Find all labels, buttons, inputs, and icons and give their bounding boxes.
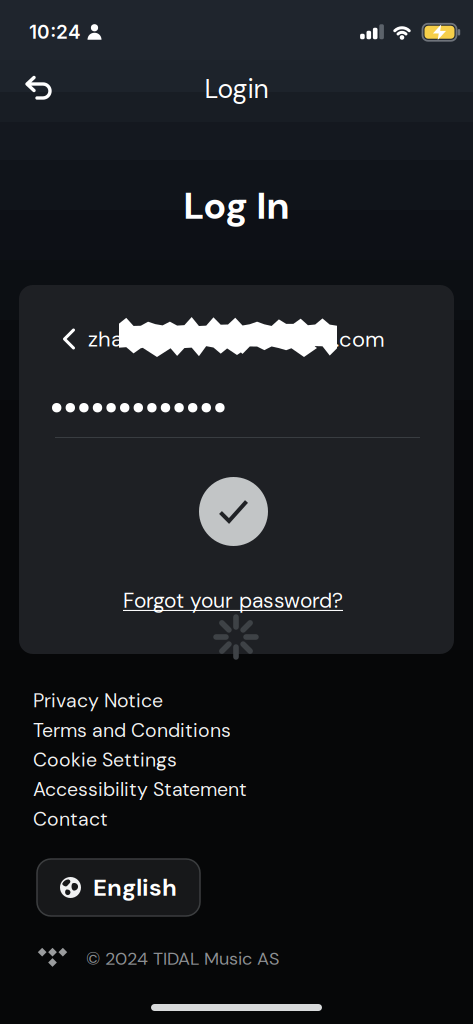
staticText: © 2024 TIDAL Music AS <box>86 947 279 970</box>
staticText: Accessibility Statement <box>33 777 247 802</box>
staticText: zha <box>88 325 123 353</box>
staticText: Privacy Notice <box>33 688 163 713</box>
staticText: 10:24 <box>29 20 81 43</box>
staticText: English <box>93 872 177 903</box>
staticText: Log In <box>183 181 289 230</box>
staticText: Contact <box>33 806 108 832</box>
button[interactable]: Change email <box>19 315 454 363</box>
button[interactable]: English <box>37 859 200 916</box>
staticText: Forgot your password? <box>123 587 343 614</box>
staticText: Terms and Conditions <box>33 718 231 743</box>
button[interactable]: Forgot your password? <box>123 587 343 614</box>
button[interactable]: Contact <box>33 806 108 832</box>
button[interactable]: Cookie Settings <box>33 747 177 773</box>
button[interactable]: Terms and Conditions <box>33 718 231 743</box>
button[interactable]: Accessibility Statement <box>33 777 247 802</box>
button[interactable]: Privacy Notice <box>33 688 163 713</box>
staticText: Cookie Settings <box>33 747 177 773</box>
button[interactable]: Back <box>0 71 54 111</box>
button[interactable]: Log in <box>199 477 268 546</box>
staticText: Login <box>204 72 268 106</box>
staticText: .com <box>335 325 385 354</box>
